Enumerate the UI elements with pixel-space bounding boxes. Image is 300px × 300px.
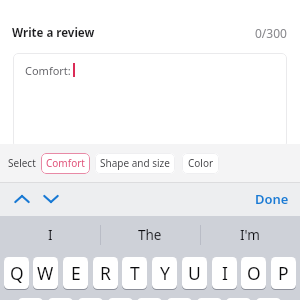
button[interactable]: Q	[4, 257, 29, 289]
button[interactable]: O	[241, 257, 266, 289]
button[interactable]: J	[197, 298, 222, 300]
button[interactable]: Previous field	[8, 184, 36, 214]
button[interactable]: E	[63, 257, 88, 289]
button[interactable]: Color	[182, 153, 219, 174]
button[interactable]: L	[256, 298, 281, 300]
staticText: I	[48, 226, 53, 244]
button[interactable]: W	[33, 257, 58, 289]
staticText: Comfort	[46, 156, 85, 170]
button[interactable]: I'm	[200, 216, 300, 254]
staticText: O	[247, 261, 261, 285]
staticText: The	[138, 226, 162, 244]
staticText: Color	[188, 156, 214, 170]
staticText: Q	[10, 261, 24, 285]
staticText: Done	[255, 190, 289, 208]
staticText: T	[130, 261, 140, 285]
staticText: Write a review	[12, 25, 95, 41]
button[interactable]: A	[18, 298, 43, 300]
button[interactable]: P	[271, 257, 296, 289]
button[interactable]: D	[78, 298, 103, 300]
staticText: U	[188, 261, 201, 285]
button[interactable]: U	[182, 257, 207, 289]
button[interactable]: Comfort:	[13, 53, 287, 148]
staticText: 0/300	[255, 25, 287, 41]
staticText: W	[37, 261, 54, 285]
button[interactable]: I	[0, 216, 100, 254]
button[interactable]: Shape and size	[95, 153, 175, 174]
staticText: Y	[160, 261, 170, 285]
button[interactable]: The	[100, 216, 200, 254]
button[interactable]: G	[137, 298, 162, 300]
staticText: Select	[8, 156, 36, 170]
button[interactable]: S	[48, 298, 73, 300]
staticText: I	[222, 261, 228, 285]
button[interactable]: Comfort	[41, 153, 90, 174]
button[interactable]: Y	[152, 257, 177, 289]
button[interactable]: Done	[250, 187, 294, 211]
staticText: I'm	[240, 226, 260, 244]
staticText: P	[278, 261, 289, 285]
button[interactable]: T	[122, 257, 147, 289]
staticText: Shape and size	[100, 156, 170, 170]
button[interactable]: K	[226, 298, 251, 300]
staticText: E	[71, 261, 81, 285]
button[interactable]: Next field	[37, 184, 65, 214]
button[interactable]: F	[108, 298, 133, 300]
staticText: Comfort:	[25, 63, 71, 78]
staticText: R	[100, 261, 111, 285]
button[interactable]: R	[93, 257, 118, 289]
button[interactable]: I	[212, 257, 237, 289]
button[interactable]: H	[167, 298, 192, 300]
